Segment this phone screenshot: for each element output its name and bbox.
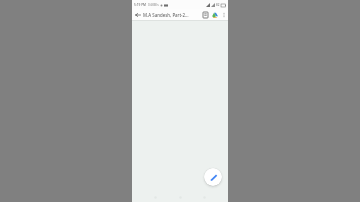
button[interactable]: More options bbox=[220, 9, 228, 20]
staticText: M.A Sandesh, Part-2… bbox=[143, 12, 189, 18]
staticText: 0.6KB/s bbox=[148, 3, 159, 7]
staticText: 5:19 PM bbox=[134, 3, 147, 7]
button[interactable]: M.A Sandesh, Part-2… bbox=[143, 9, 200, 20]
button[interactable]: Save bbox=[200, 9, 210, 20]
button[interactable]: Add to Drive bbox=[210, 9, 220, 20]
staticText: 82 bbox=[216, 3, 220, 7]
button[interactable]: Edit bbox=[204, 168, 222, 186]
button[interactable]: Back bbox=[132, 9, 143, 20]
